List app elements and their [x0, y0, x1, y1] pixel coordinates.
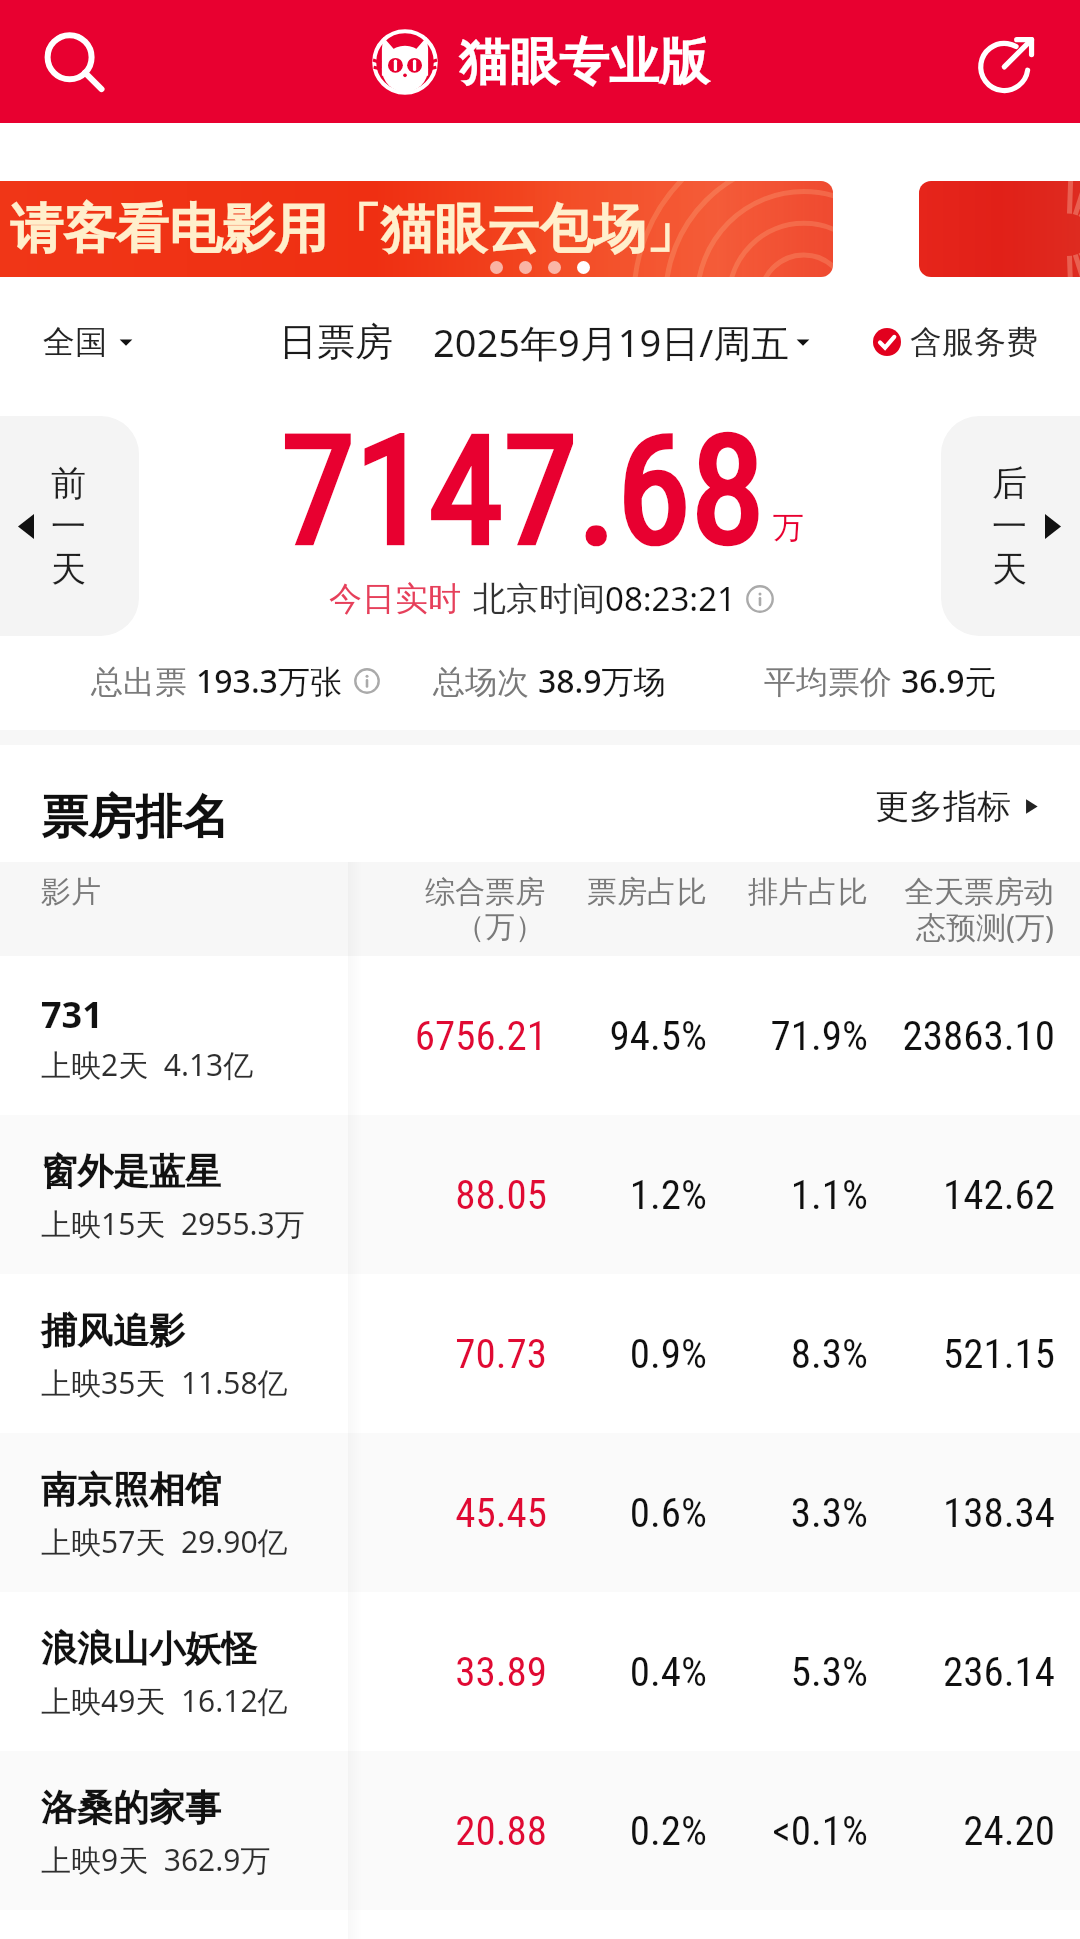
- staticText: 上映35天 11.58亿: [41, 1362, 288, 1403]
- staticText: 38.9万场: [538, 659, 666, 703]
- staticText: 138.34: [835, 1489, 1055, 1537]
- staticText: 影片: [41, 873, 101, 911]
- staticText: 上映49天 16.12亿: [41, 1680, 288, 1721]
- staticText: 5.3%: [688, 1648, 868, 1696]
- staticText: 上映9天 362.9万: [41, 1839, 271, 1880]
- staticText: 2025年9月19日/周五: [433, 316, 790, 368]
- staticText: 平均票价: [764, 659, 901, 703]
- staticText: 总出票: [91, 659, 196, 703]
- staticText: 更多指标: [875, 785, 1011, 828]
- button[interactable]: 前 一 天: [0, 416, 139, 636]
- staticText: 全天票房动 态预测(万): [864, 873, 1054, 947]
- staticText: 综合票房 （万）: [285, 873, 545, 946]
- button[interactable]: 浪浪山小妖怪: [0, 1592, 1080, 1751]
- staticText: 排片占比: [708, 873, 868, 911]
- staticText: <0.1%: [688, 1807, 868, 1855]
- staticText: 上映15天 2955.3万: [41, 1203, 305, 1244]
- staticText: 前 一 天: [51, 461, 86, 592]
- staticText: 33.89: [287, 1648, 547, 1696]
- staticText: 8.3%: [688, 1330, 868, 1378]
- button[interactable]: 请客看电影用「猫眼云包场」: [0, 181, 833, 277]
- button[interactable]: 南京照相馆: [0, 1433, 1080, 1592]
- staticText: 全国: [43, 322, 107, 362]
- staticText: 6756.21: [287, 1012, 547, 1060]
- staticText: 3.3%: [688, 1489, 868, 1537]
- staticText: 0.6%: [527, 1489, 707, 1537]
- staticText: 票房排名: [41, 788, 229, 847]
- button[interactable]: Share: [964, 18, 1052, 106]
- button[interactable]: 后 一 天: [941, 416, 1080, 636]
- staticText: 236.14: [835, 1648, 1055, 1696]
- staticText: 193.3万张: [196, 659, 342, 703]
- staticText: 窗外是蓝星: [41, 1149, 221, 1194]
- staticText: 捕风追影: [41, 1308, 185, 1353]
- staticText: 上映2天 4.13亿: [41, 1044, 254, 1085]
- staticText: 08:23:21: [605, 576, 736, 621]
- button[interactable]: 日票房: [279, 302, 810, 382]
- staticText: 0.2%: [527, 1807, 707, 1855]
- staticText: 88.05: [287, 1171, 547, 1219]
- button[interactable]: 含服务费: [867, 308, 1044, 376]
- staticText: 71.9%: [688, 1012, 868, 1060]
- staticText: 后 一 天: [992, 461, 1027, 592]
- staticText: 94.5%: [527, 1012, 707, 1060]
- staticText: 20.88: [287, 1807, 547, 1855]
- staticText: 日票房: [279, 318, 393, 366]
- staticText: 浪浪山小妖怪: [41, 1626, 257, 1671]
- staticText: 36.9元: [901, 659, 997, 703]
- staticText: 总场次: [433, 659, 538, 703]
- button[interactable]: 全国: [25, 306, 147, 378]
- staticText: 24.20: [835, 1807, 1055, 1855]
- button[interactable]: 洛桑的家事: [0, 1751, 1080, 1910]
- staticText: 1.2%: [527, 1171, 707, 1219]
- button[interactable]: 更多指标: [867, 771, 1048, 842]
- staticText: 1.1%: [688, 1171, 868, 1219]
- staticText: 请客看电影用「猫眼云包场」: [10, 196, 699, 263]
- button[interactable]: 731: [0, 956, 1080, 1115]
- staticText: 今日实时: [329, 578, 461, 620]
- staticText: 含服务费: [910, 322, 1038, 362]
- staticText: 票房占比: [547, 873, 707, 911]
- staticText: 521.15: [835, 1330, 1055, 1378]
- button[interactable]: Search: [28, 18, 116, 106]
- button[interactable]: 捕风追影: [0, 1274, 1080, 1433]
- staticText: 0.4%: [527, 1648, 707, 1696]
- staticText: 北京时间: [473, 578, 605, 620]
- staticText: 猫眼专业版: [459, 31, 709, 94]
- button[interactable]: 窗外是蓝星: [0, 1115, 1080, 1274]
- staticText: 142.62: [835, 1171, 1055, 1219]
- staticText: 45.45: [287, 1489, 547, 1537]
- staticText: 南京照相馆: [41, 1467, 221, 1512]
- staticText: 上映57天 29.90亿: [41, 1521, 288, 1562]
- staticText: 0.9%: [527, 1330, 707, 1378]
- staticText: 洛桑的家事: [41, 1785, 221, 1830]
- button[interactable]: [919, 181, 1080, 277]
- staticText: 23863.10: [835, 1012, 1055, 1060]
- staticText: 731: [41, 990, 103, 1039]
- staticText: 万: [773, 508, 804, 547]
- staticText: 70.73: [287, 1330, 547, 1378]
- staticText: 7147.68: [281, 404, 765, 580]
